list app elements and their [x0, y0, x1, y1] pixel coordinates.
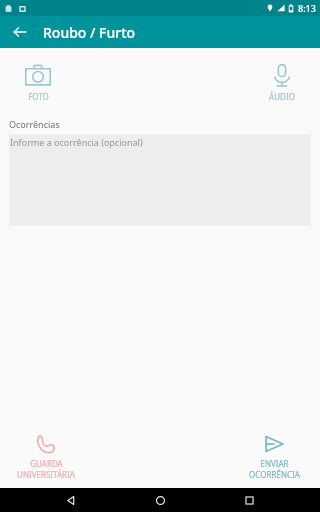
button[interactable]: FOTO [10, 62, 66, 102]
button[interactable]: Back [53, 488, 89, 512]
button[interactable]: Recent apps [231, 488, 267, 512]
button[interactable]: GUARDA [8, 433, 84, 480]
staticText: FOTO [28, 91, 49, 102]
button[interactable]: Informe a ocorrência (opcional) [9, 134, 311, 226]
button[interactable]: ENVIAR [236, 433, 312, 480]
staticText: ÁUDIO [269, 91, 295, 102]
staticText: Ocorrências [9, 118, 60, 130]
staticText: OCORRÊNCIA [249, 469, 300, 480]
staticText: ENVIAR [260, 458, 289, 469]
staticText: UNIVERSITÁRIA [17, 469, 75, 480]
staticText: Roubo / Furto [43, 23, 136, 42]
button[interactable]: Home [142, 488, 178, 512]
staticText: 8:13 [298, 2, 316, 14]
staticText: Informe a ocorrência (opcional) [10, 136, 143, 148]
staticText: GUARDA [30, 458, 63, 469]
button[interactable]: ÁUDIO [254, 62, 310, 102]
button[interactable]: Back [8, 20, 32, 44]
